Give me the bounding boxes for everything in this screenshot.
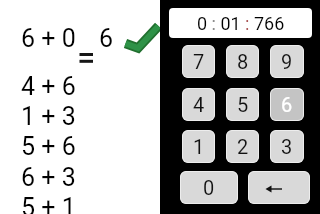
staticText: 2: [237, 135, 249, 158]
button[interactable]: 3: [270, 130, 304, 163]
staticText: 5 + 6: [21, 132, 76, 161]
button[interactable]: 2: [226, 130, 259, 163]
button[interactable]: 6: [270, 88, 304, 121]
staticText: 1 + 3: [21, 102, 76, 131]
staticText: 0: [203, 176, 215, 199]
staticText: 7: [193, 50, 205, 73]
staticText: 8: [237, 50, 249, 73]
button[interactable]: 0: [180, 171, 238, 204]
staticText: 9: [281, 50, 293, 73]
button[interactable]: 9: [270, 45, 304, 78]
staticText: 6 + 0: [21, 24, 76, 53]
staticText: 0 : 01 : 766: [197, 13, 285, 34]
button[interactable]: 4: [182, 88, 215, 121]
staticText: 3: [281, 135, 293, 158]
button[interactable]: [248, 171, 310, 204]
staticText: 1: [193, 135, 205, 158]
staticText: 6 + 3: [21, 163, 76, 192]
staticText: 4: [193, 93, 205, 116]
staticText: 5 + 1: [21, 193, 76, 214]
button[interactable]: 1: [182, 130, 215, 163]
button[interactable]: 5: [226, 88, 259, 121]
staticText: 5: [237, 93, 249, 116]
button[interactable]: 8: [226, 45, 259, 78]
staticText: 6: [99, 24, 114, 53]
button[interactable]: 7: [182, 45, 215, 78]
staticText: 4 + 6: [21, 72, 76, 101]
staticText: 6: [281, 93, 293, 116]
